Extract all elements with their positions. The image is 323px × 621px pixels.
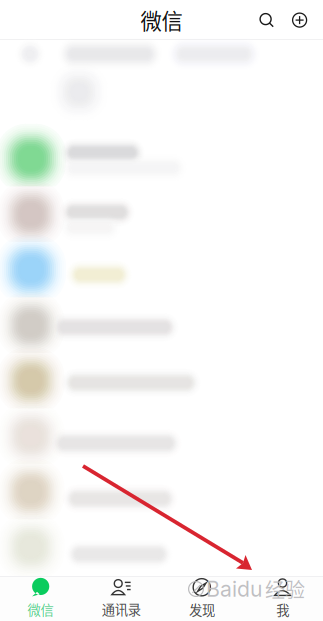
button[interactable] <box>0 353 323 408</box>
button[interactable]: 微信 <box>0 576 81 620</box>
button[interactable] <box>0 519 323 575</box>
button[interactable]: Search <box>250 5 283 35</box>
button[interactable]: 我 <box>242 576 323 620</box>
staticText: 微信 <box>140 5 182 35</box>
staticText: 微信 <box>27 600 53 619</box>
button[interactable] <box>0 464 323 519</box>
button[interactable] <box>0 297 323 353</box>
button[interactable] <box>0 408 323 464</box>
button[interactable] <box>0 186 323 242</box>
staticText: 我 <box>276 600 289 619</box>
staticText: 通讯录 <box>102 599 141 619</box>
staticText: 经验 <box>265 574 305 603</box>
staticText: 发现 <box>189 600 215 619</box>
staticText: Baidu <box>206 576 263 602</box>
button[interactable]: 发现 <box>161 576 242 620</box>
button[interactable]: 通讯录 <box>81 576 162 620</box>
button[interactable] <box>0 131 323 186</box>
button[interactable] <box>0 242 323 297</box>
button[interactable]: Add <box>283 5 316 35</box>
